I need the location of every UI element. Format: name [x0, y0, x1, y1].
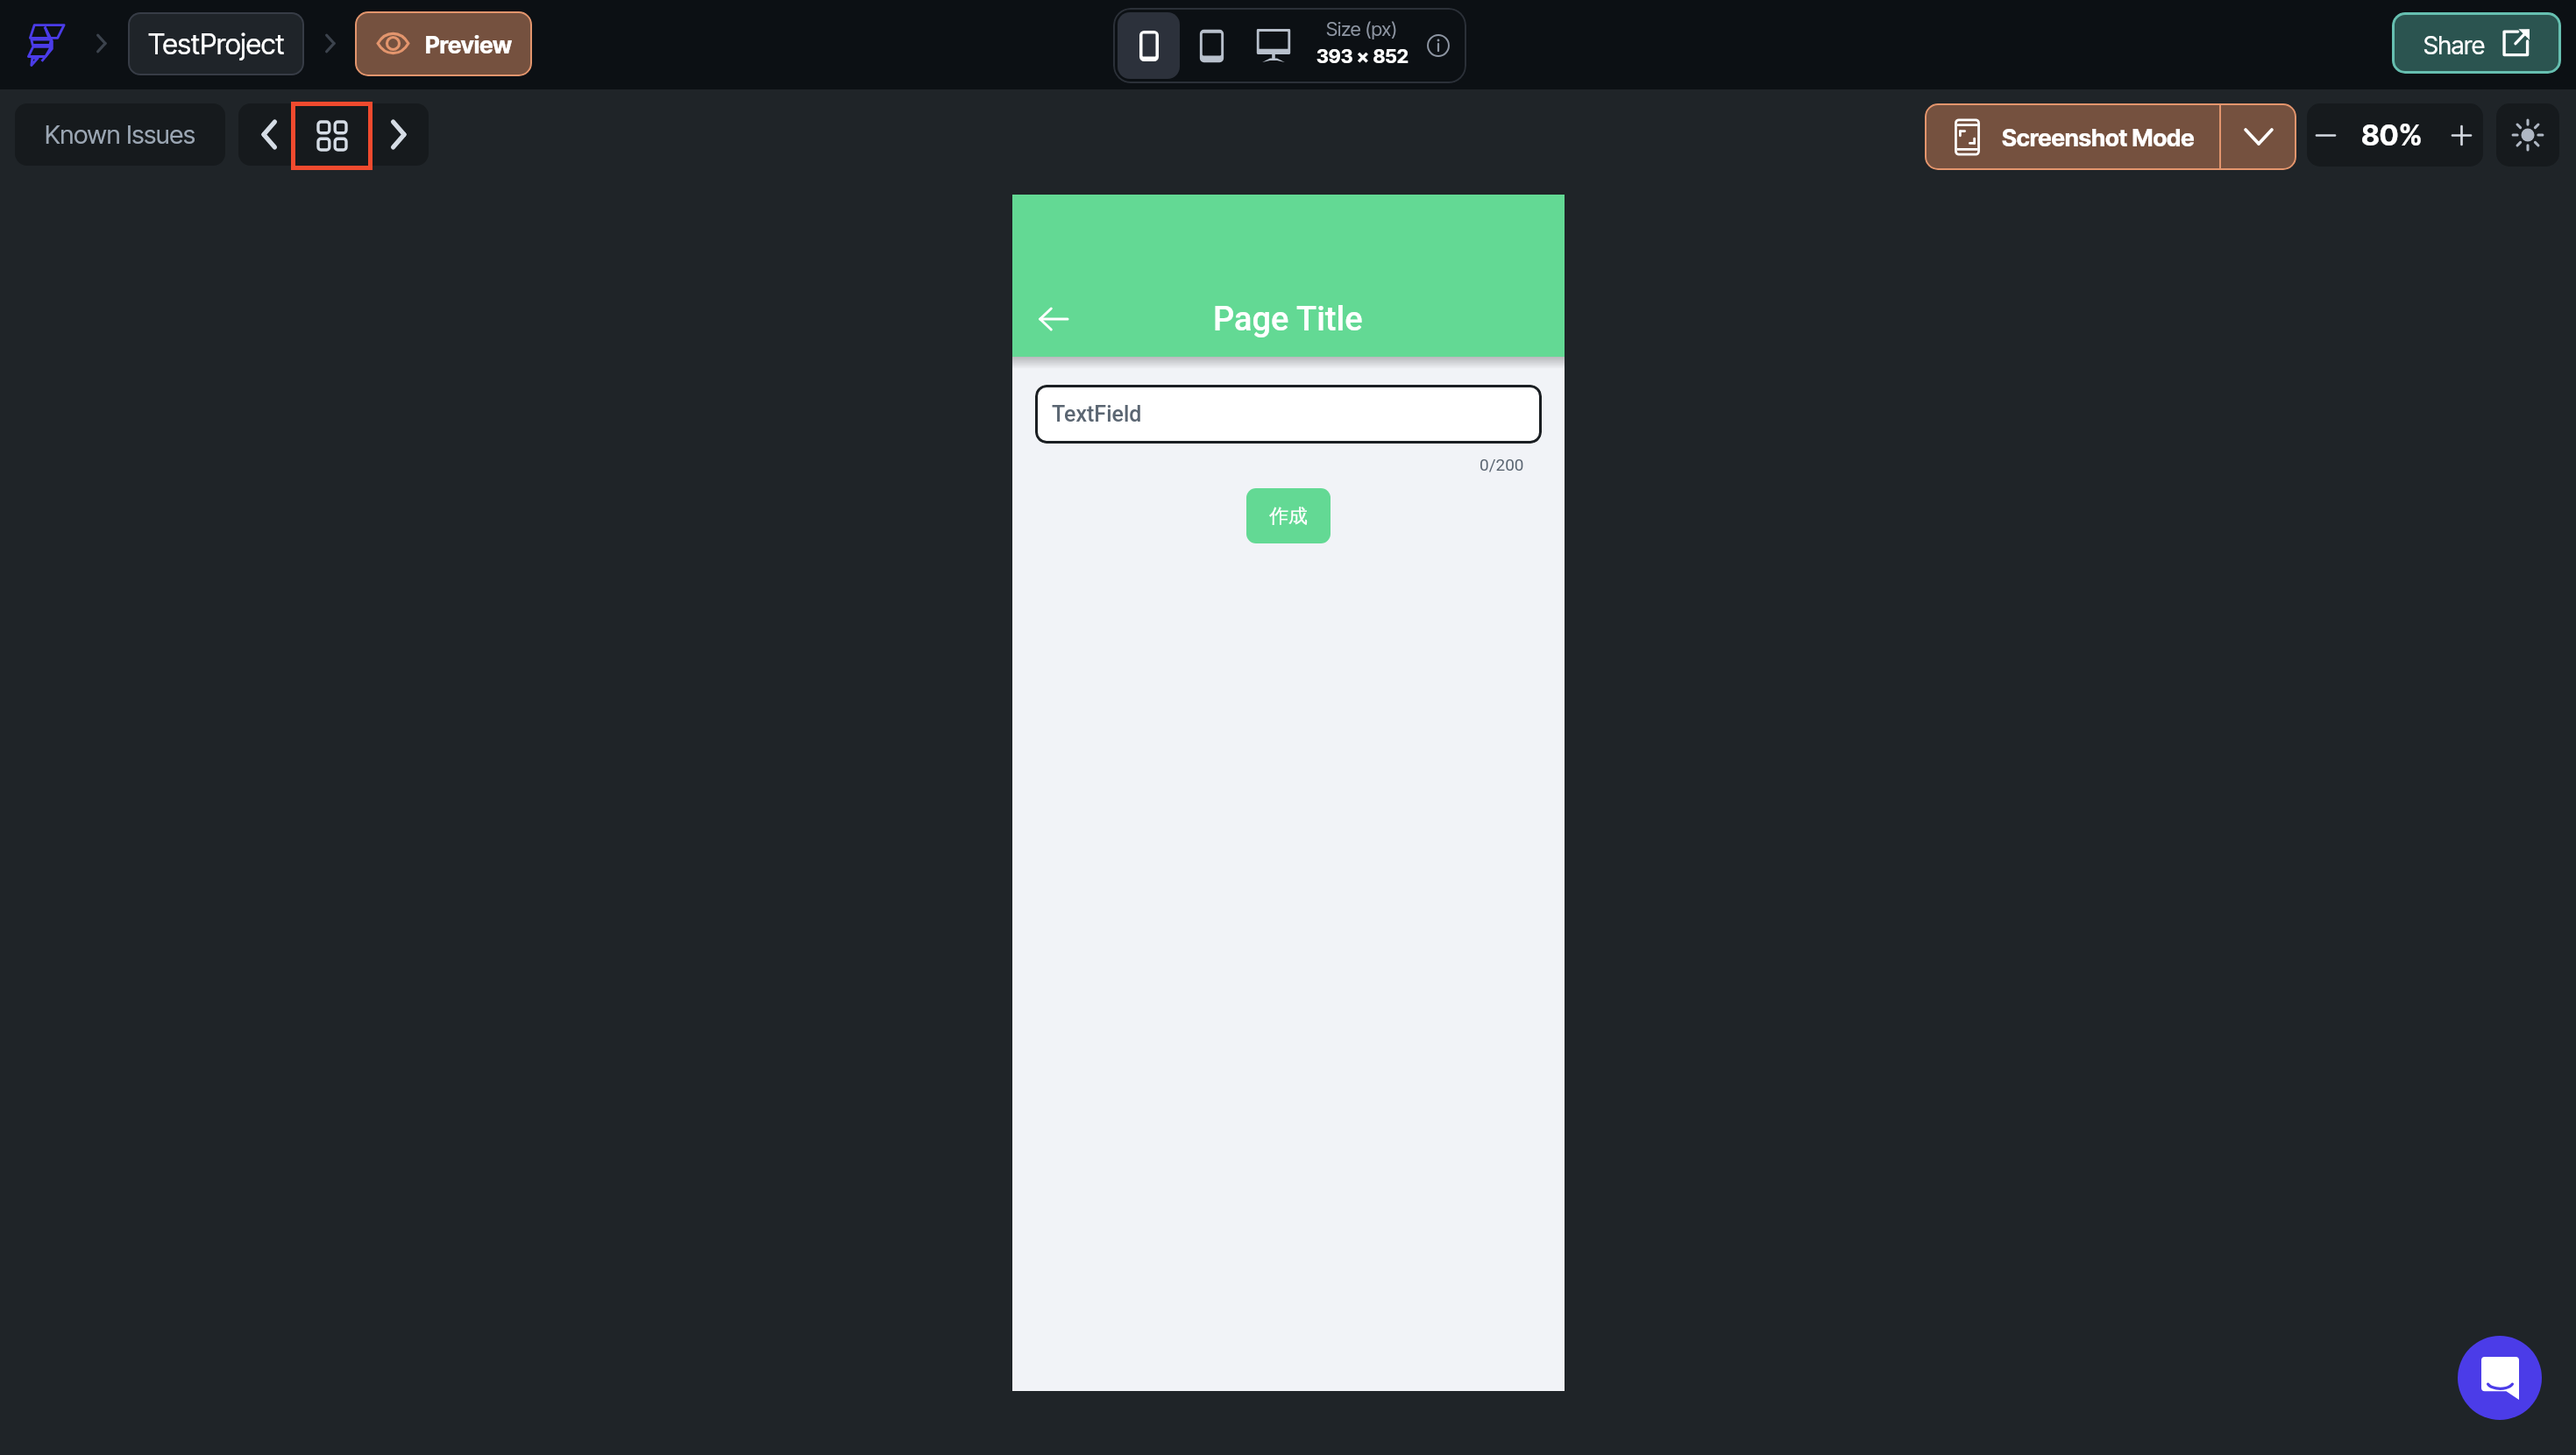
- button[interactable]: Page grid: [291, 102, 373, 170]
- button[interactable]: Phone size: [1118, 12, 1180, 79]
- staticText: 393 × 852: [1316, 45, 1409, 68]
- button[interactable]: Theme: [2496, 103, 2559, 167]
- button[interactable]: Zoom out: [2307, 103, 2344, 167]
- button[interactable]: Zoom in: [2440, 103, 2483, 167]
- button[interactable]: Back: [1031, 296, 1076, 342]
- button[interactable]: 作成: [1246, 488, 1331, 543]
- button[interactable]: TestProject: [128, 12, 304, 75]
- staticText: TextField: [1052, 401, 1142, 427]
- staticText: Page Title: [1213, 300, 1363, 339]
- button[interactable]: Share: [2392, 12, 2561, 74]
- button[interactable]: Screenshot options: [2221, 103, 2296, 170]
- button[interactable]: Screenshot Mode: [1925, 103, 2219, 170]
- button[interactable]: Tablet size: [1184, 12, 1238, 79]
- button[interactable]: Desktop size: [1245, 12, 1302, 79]
- staticText: 作成: [1269, 504, 1308, 529]
- button[interactable]: Previous page: [242, 103, 296, 166]
- button[interactable]: TextField: [1035, 385, 1542, 444]
- staticText: 80%: [2361, 117, 2423, 153]
- staticText: 0/200: [1480, 455, 1524, 474]
- button[interactable]: Size info: [1423, 31, 1453, 60]
- button[interactable]: FlutterFlow home: [19, 18, 72, 71]
- button[interactable]: App preview canvas: [1012, 195, 1565, 1391]
- staticText: Known Issues: [45, 119, 195, 150]
- button[interactable]: Preview: [355, 11, 532, 76]
- button[interactable]: Known Issues: [15, 103, 225, 166]
- staticText: TestProject: [148, 27, 285, 61]
- button[interactable]: Next page: [372, 103, 426, 166]
- button[interactable]: Open chat: [2458, 1336, 2542, 1420]
- staticText: Screenshot Mode: [2002, 124, 2195, 153]
- staticText: Size (px): [1326, 18, 1398, 41]
- staticText: Preview: [425, 31, 513, 60]
- staticText: Share: [2423, 31, 2485, 60]
